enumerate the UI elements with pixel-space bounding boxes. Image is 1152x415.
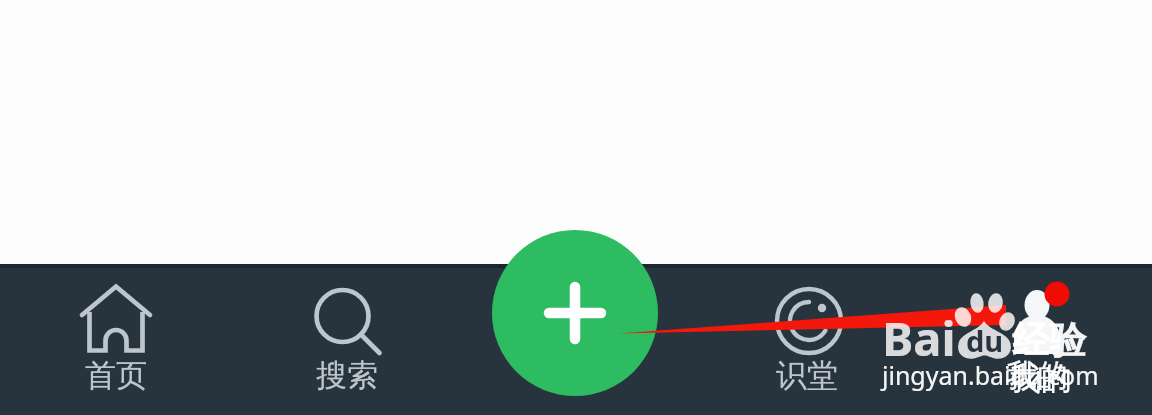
staticText: 我的 [1010,359,1072,398]
button[interactable]: Search [231,264,462,415]
staticText: 我的 [1006,356,1068,395]
staticText: 搜索 [316,356,378,395]
button[interactable]: Home [0,264,231,415]
staticText: du [966,321,1004,360]
button[interactable]: Profile [922,264,1152,415]
button[interactable]: Discover [692,264,922,415]
staticText: 识堂 [776,356,838,395]
staticText: 首页 [85,356,147,395]
staticText: Bai [882,306,956,370]
staticText: jingyan.baidu.com [882,358,1099,392]
button[interactable]: Add [492,230,658,396]
staticText: 经验 [1012,317,1086,364]
